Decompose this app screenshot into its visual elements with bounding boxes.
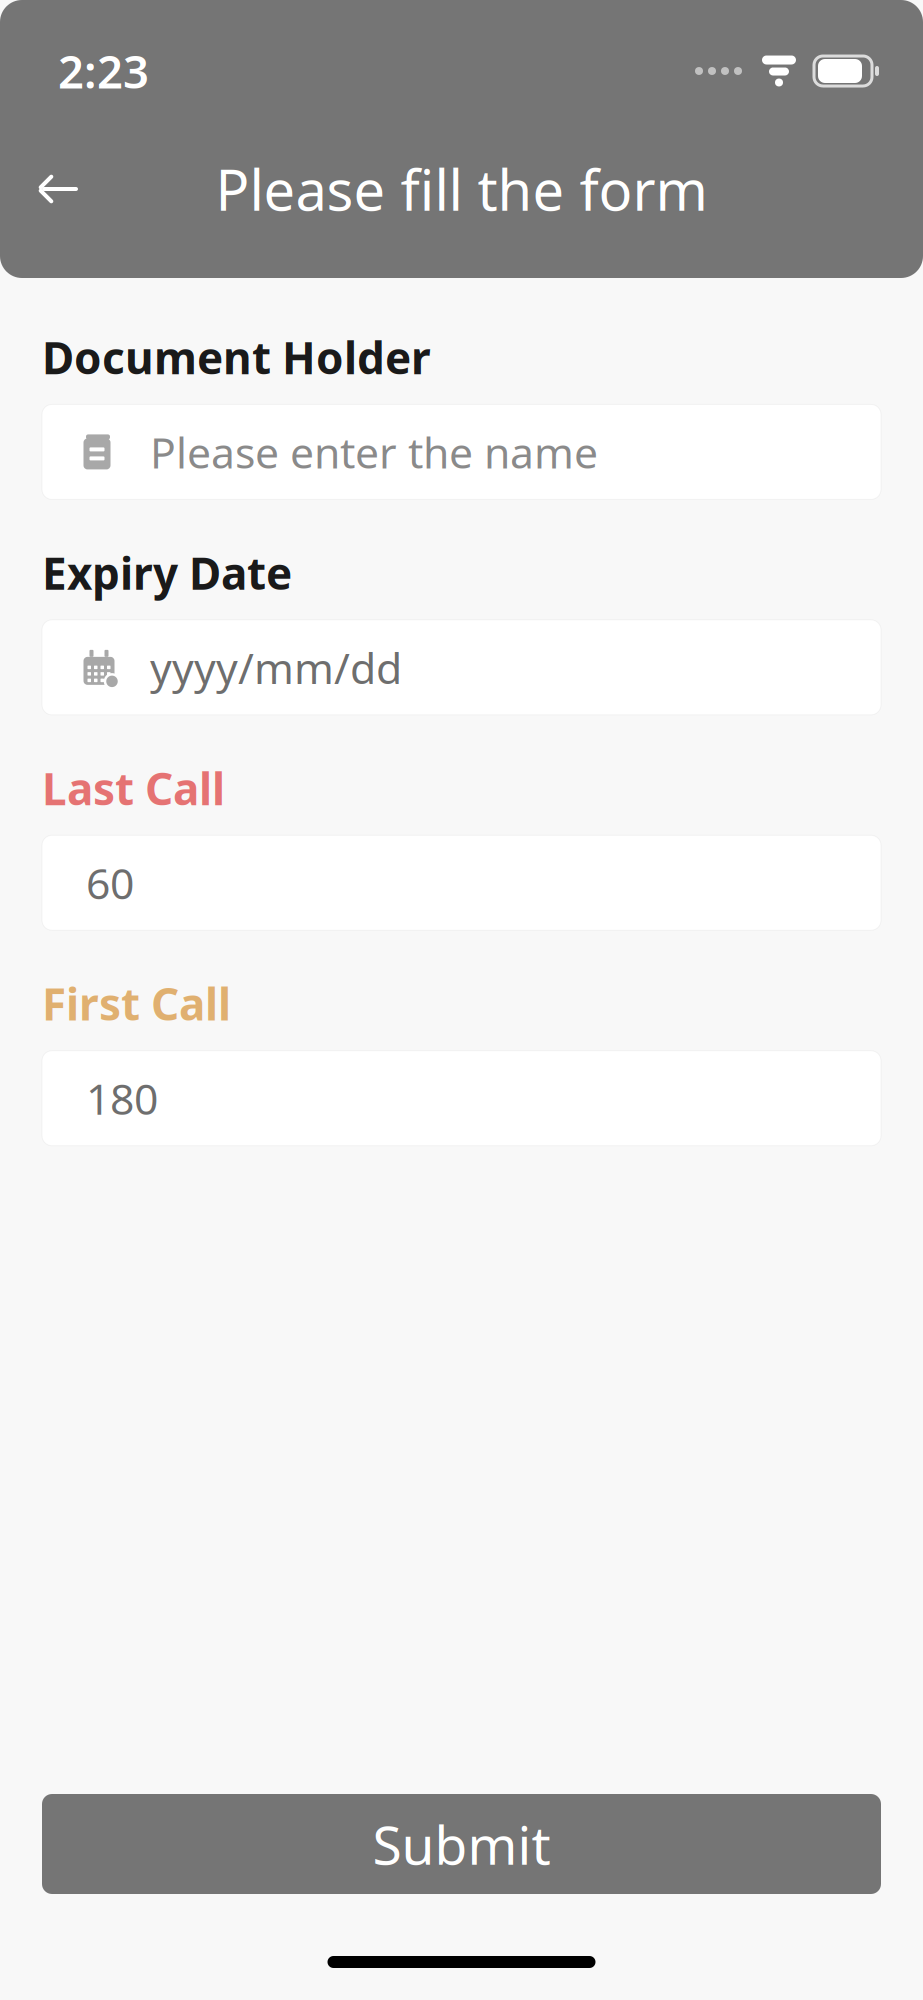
staticText: First Call — [42, 974, 231, 1033]
staticText: 180 — [86, 1070, 158, 1127]
button[interactable]: Please enter the name — [42, 404, 881, 499]
staticText: Expiry Date — [42, 543, 292, 602]
button[interactable]: yyyy/mm/dd — [42, 620, 881, 715]
staticText: Please enter the name — [150, 424, 598, 480]
staticText: yyyy/mm/dd — [150, 639, 402, 696]
staticText: Document Holder — [42, 328, 431, 386]
staticText: Submit — [372, 1809, 550, 1879]
button[interactable]: 60 — [42, 835, 881, 930]
button[interactable]: Submit — [42, 1794, 881, 1894]
staticText: 60 — [86, 854, 134, 911]
staticText: 2:23 — [58, 41, 149, 101]
staticText: Last Call — [42, 759, 225, 817]
button[interactable]: Back — [14, 143, 106, 235]
staticText: Please fill the form — [215, 152, 707, 226]
button[interactable]: 180 — [42, 1051, 881, 1146]
